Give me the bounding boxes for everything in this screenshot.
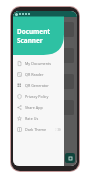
staticText: QR Reader (25, 72, 44, 77)
button[interactable]: Share App (13, 102, 64, 113)
staticText: QR Generator (25, 83, 49, 88)
button[interactable]: Privacy Policy (13, 91, 64, 102)
button[interactable]: Rate Us (13, 113, 64, 124)
staticText: Dark Theme (25, 127, 47, 132)
button[interactable]: Dark Theme (13, 124, 64, 135)
button[interactable]: My Documents (13, 58, 64, 69)
staticText: Rate Us (25, 116, 39, 121)
button[interactable]: Scan document (65, 153, 75, 163)
staticText: Privacy Policy (25, 94, 49, 99)
button[interactable]: QR Generator (13, 80, 64, 91)
staticText: Document Scanner (17, 27, 64, 45)
staticText: My Documents (25, 61, 52, 66)
button[interactable]: QR Reader (13, 69, 64, 80)
staticText: Share App (25, 105, 43, 110)
